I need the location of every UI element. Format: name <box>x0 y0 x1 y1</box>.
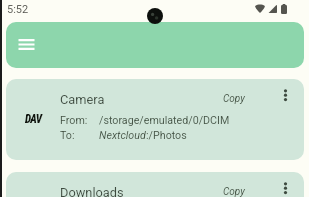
staticText: To: <box>60 129 75 142</box>
button[interactable]: Open navigation drawer <box>14 32 39 57</box>
staticText: DAV <box>25 112 41 125</box>
staticText: Copy <box>223 186 245 197</box>
button[interactable]: More options <box>268 172 303 197</box>
button[interactable]: More options <box>268 79 303 112</box>
staticText: From: <box>60 114 88 127</box>
staticText: Downloads <box>60 185 124 197</box>
staticText: Camera <box>60 92 105 107</box>
staticText: Copy <box>223 93 245 105</box>
button[interactable]: Downloads <box>6 172 304 197</box>
staticText: Nextcloud <box>99 129 146 142</box>
staticText: /storage/emulated/0/DCIM <box>99 114 230 127</box>
staticText: 5:52 <box>7 3 29 16</box>
staticText: :/Photos <box>146 129 187 142</box>
button[interactable]: Camera <box>6 79 304 160</box>
